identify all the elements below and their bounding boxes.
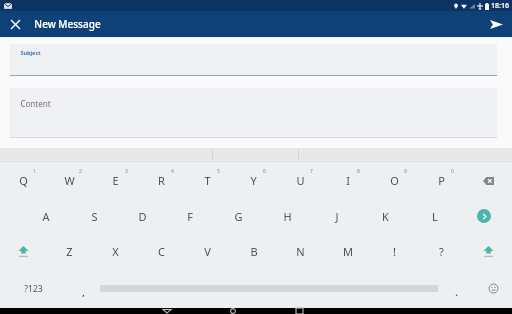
button[interactable]: Emoji bbox=[474, 269, 512, 308]
button[interactable]: Shift bbox=[465, 233, 512, 269]
button[interactable]: Enter bbox=[459, 199, 508, 233]
button[interactable]: W bbox=[46, 162, 92, 199]
staticText: Q bbox=[19, 173, 28, 188]
button[interactable]: H bbox=[263, 199, 312, 233]
staticText: 2 bbox=[79, 168, 82, 175]
button[interactable]: ! bbox=[371, 233, 418, 269]
staticText: V bbox=[204, 244, 211, 259]
button[interactable]: T bbox=[184, 162, 230, 199]
button[interactable]: ?123 bbox=[0, 269, 66, 308]
button[interactable]: K bbox=[361, 199, 410, 233]
staticText: Content bbox=[20, 98, 51, 109]
button[interactable]: Subject bbox=[10, 44, 497, 75]
button[interactable]: ? bbox=[418, 233, 465, 269]
button[interactable]: P bbox=[418, 162, 465, 199]
staticText: 6 bbox=[263, 168, 266, 175]
button[interactable]: Y bbox=[230, 162, 277, 199]
button[interactable]: O bbox=[371, 162, 418, 199]
button[interactable]: Recents bbox=[266, 308, 332, 314]
staticText: 1 bbox=[33, 168, 36, 175]
button[interactable]: R bbox=[138, 162, 184, 199]
staticText: N bbox=[296, 244, 305, 259]
staticText: F bbox=[187, 209, 193, 224]
staticText: O bbox=[390, 173, 399, 188]
staticText: ! bbox=[393, 244, 396, 259]
button[interactable]: Q bbox=[0, 162, 46, 199]
staticText: E bbox=[112, 173, 119, 188]
button[interactable]: F bbox=[166, 199, 214, 233]
button[interactable]: J bbox=[312, 199, 361, 233]
button[interactable]: Back bbox=[134, 308, 200, 314]
staticText: T bbox=[204, 173, 211, 188]
button[interactable]: Backspace bbox=[465, 162, 512, 199]
button[interactable]: . bbox=[438, 269, 474, 308]
staticText: , bbox=[82, 286, 85, 298]
button[interactable]: , bbox=[66, 269, 100, 308]
staticText: R bbox=[158, 173, 165, 188]
button[interactable]: X bbox=[92, 233, 138, 269]
staticText: Y bbox=[250, 173, 257, 188]
staticText: . bbox=[455, 286, 458, 298]
button[interactable]: B bbox=[230, 233, 277, 269]
staticText: G bbox=[234, 209, 243, 224]
staticText: Z bbox=[66, 244, 73, 259]
button[interactable]: S bbox=[70, 199, 118, 233]
staticText: P bbox=[438, 173, 445, 188]
button[interactable]: Send bbox=[486, 14, 506, 34]
button[interactable]: V bbox=[184, 233, 230, 269]
button[interactable]: C bbox=[138, 233, 184, 269]
button[interactable]: Home bbox=[200, 308, 266, 314]
button[interactable]: G bbox=[214, 199, 263, 233]
button[interactable]: L bbox=[410, 199, 459, 233]
staticText: New Message bbox=[34, 17, 101, 31]
staticText: I bbox=[346, 173, 350, 188]
button[interactable]: M bbox=[324, 233, 371, 269]
button[interactable]: E bbox=[92, 162, 138, 199]
button[interactable]: Content bbox=[10, 88, 497, 137]
staticText: X bbox=[112, 244, 119, 259]
button[interactable]: D bbox=[118, 199, 166, 233]
staticText: J bbox=[335, 209, 339, 224]
staticText: ?123 bbox=[24, 283, 43, 295]
staticText: 8 bbox=[357, 168, 360, 175]
staticText: Subject bbox=[20, 49, 41, 56]
staticText: 9 bbox=[404, 168, 407, 175]
staticText: C bbox=[158, 244, 165, 259]
staticText: D bbox=[138, 209, 147, 224]
button[interactable]: Space bbox=[100, 269, 438, 308]
button[interactable]: N bbox=[277, 233, 324, 269]
button[interactable]: I bbox=[324, 162, 371, 199]
staticText: 5 bbox=[217, 168, 220, 175]
staticText: H bbox=[283, 209, 292, 224]
staticText: ? bbox=[439, 244, 444, 259]
button[interactable]: U bbox=[277, 162, 324, 199]
staticText: S bbox=[91, 209, 98, 224]
staticText: 7 bbox=[310, 168, 313, 175]
staticText: 4 bbox=[171, 168, 174, 175]
staticText: 3 bbox=[125, 168, 128, 175]
button[interactable]: Shift bbox=[0, 233, 46, 269]
staticText: A bbox=[42, 209, 50, 224]
staticText: L bbox=[432, 209, 438, 224]
staticText: U bbox=[296, 173, 305, 188]
button[interactable]: A bbox=[22, 199, 70, 233]
button[interactable]: Close bbox=[6, 15, 24, 33]
staticText: K bbox=[382, 209, 389, 224]
staticText: 0 bbox=[451, 168, 454, 175]
staticText: B bbox=[250, 244, 258, 259]
staticText: M bbox=[343, 244, 353, 259]
staticText: 18:16 bbox=[491, 1, 509, 11]
button[interactable]: Z bbox=[46, 233, 92, 269]
staticText: W bbox=[64, 173, 75, 188]
